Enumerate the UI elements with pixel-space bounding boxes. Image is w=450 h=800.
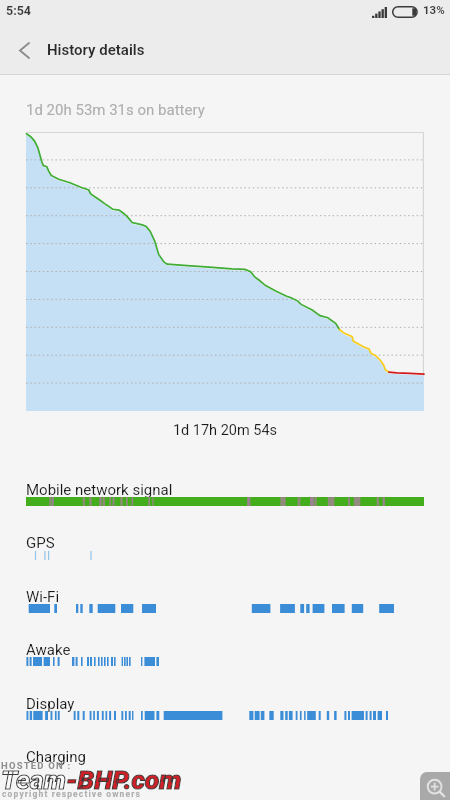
staticText: HOSTED ON : [1,760,72,771]
staticText: Wi-Fi [26,588,60,606]
staticText: Team [1,764,66,795]
staticText: Display [26,695,75,713]
staticText: 13% [423,3,445,16]
staticText: 5:54 [6,3,32,18]
staticText: 1d 20h 53m 31s on battery [26,101,205,119]
staticText: Awake [26,641,71,659]
staticText: Charging [26,748,86,766]
staticText: History details [47,41,145,59]
staticText: Team [1,764,66,795]
staticText: 1d 17h 20m 54s [0,422,450,439]
staticText: copyright respective owners [2,789,142,799]
staticText: -BHP.com [66,764,182,795]
staticText: GPS [26,534,55,552]
button[interactable]: Zoom in [420,772,450,800]
button[interactable]: Back [2,28,46,72]
staticText: Mobile network signal [26,481,173,499]
staticText: -BHP.com [66,764,182,795]
